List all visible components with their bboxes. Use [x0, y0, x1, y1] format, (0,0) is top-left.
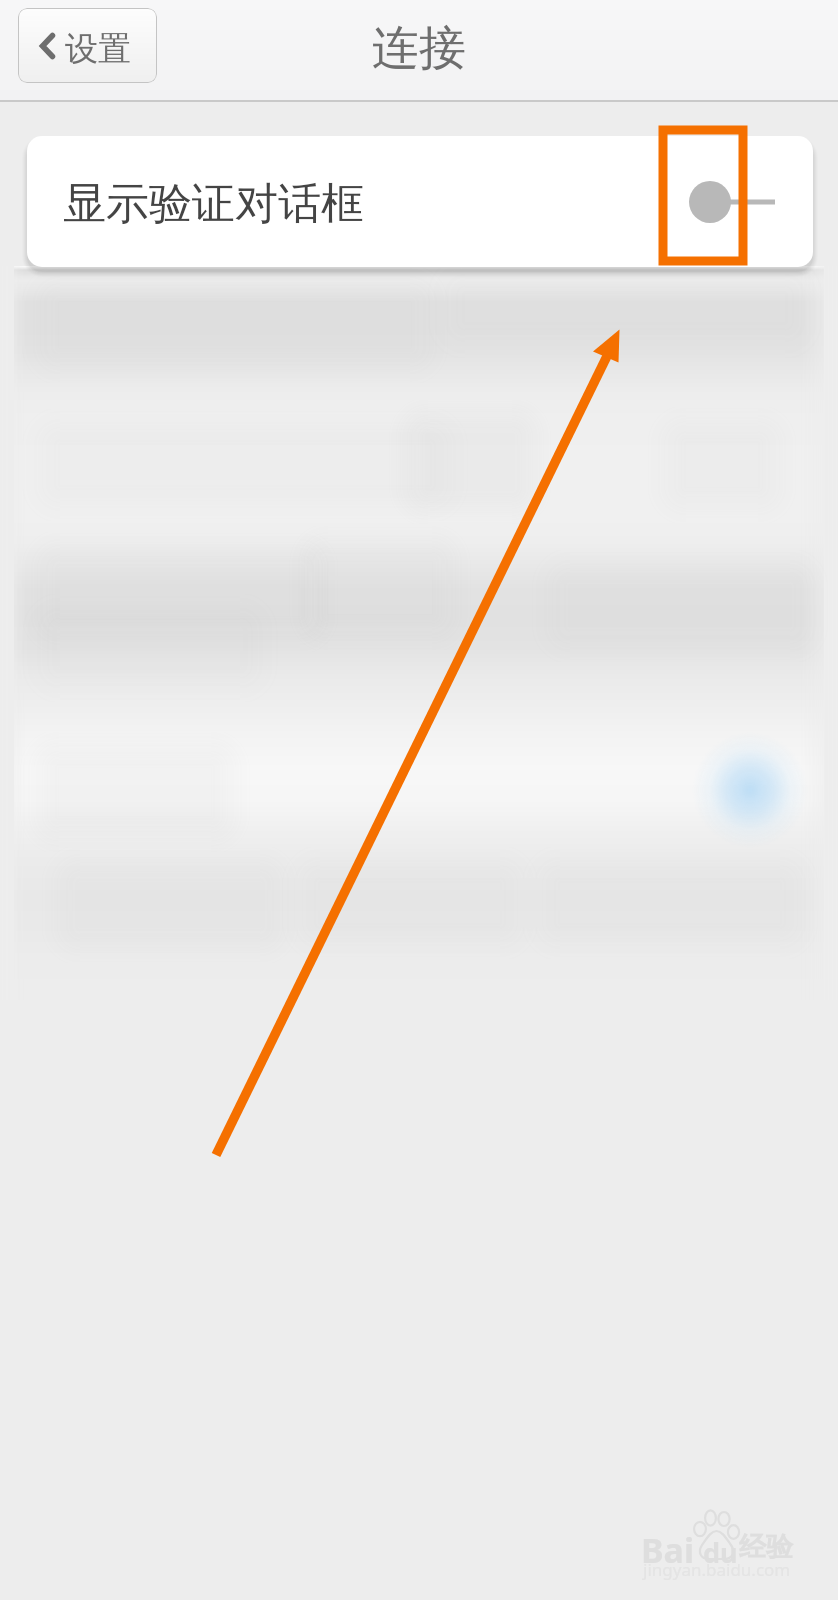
- staticText: 连接: [372, 19, 466, 78]
- staticText: Bai: [641, 1527, 695, 1573]
- staticText: 显示验证对话框: [63, 177, 364, 231]
- button[interactable]: Show verification dialog switch, off: [689, 176, 775, 228]
- staticText: du: [703, 1534, 738, 1571]
- staticText: jingyan.baidu.com: [643, 1558, 791, 1581]
- staticText: 设置: [65, 28, 131, 70]
- staticText: 经验: [739, 1530, 793, 1564]
- button[interactable]: 设置: [18, 8, 157, 83]
- button[interactable]: 显示验证对话框: [27, 136, 813, 267]
